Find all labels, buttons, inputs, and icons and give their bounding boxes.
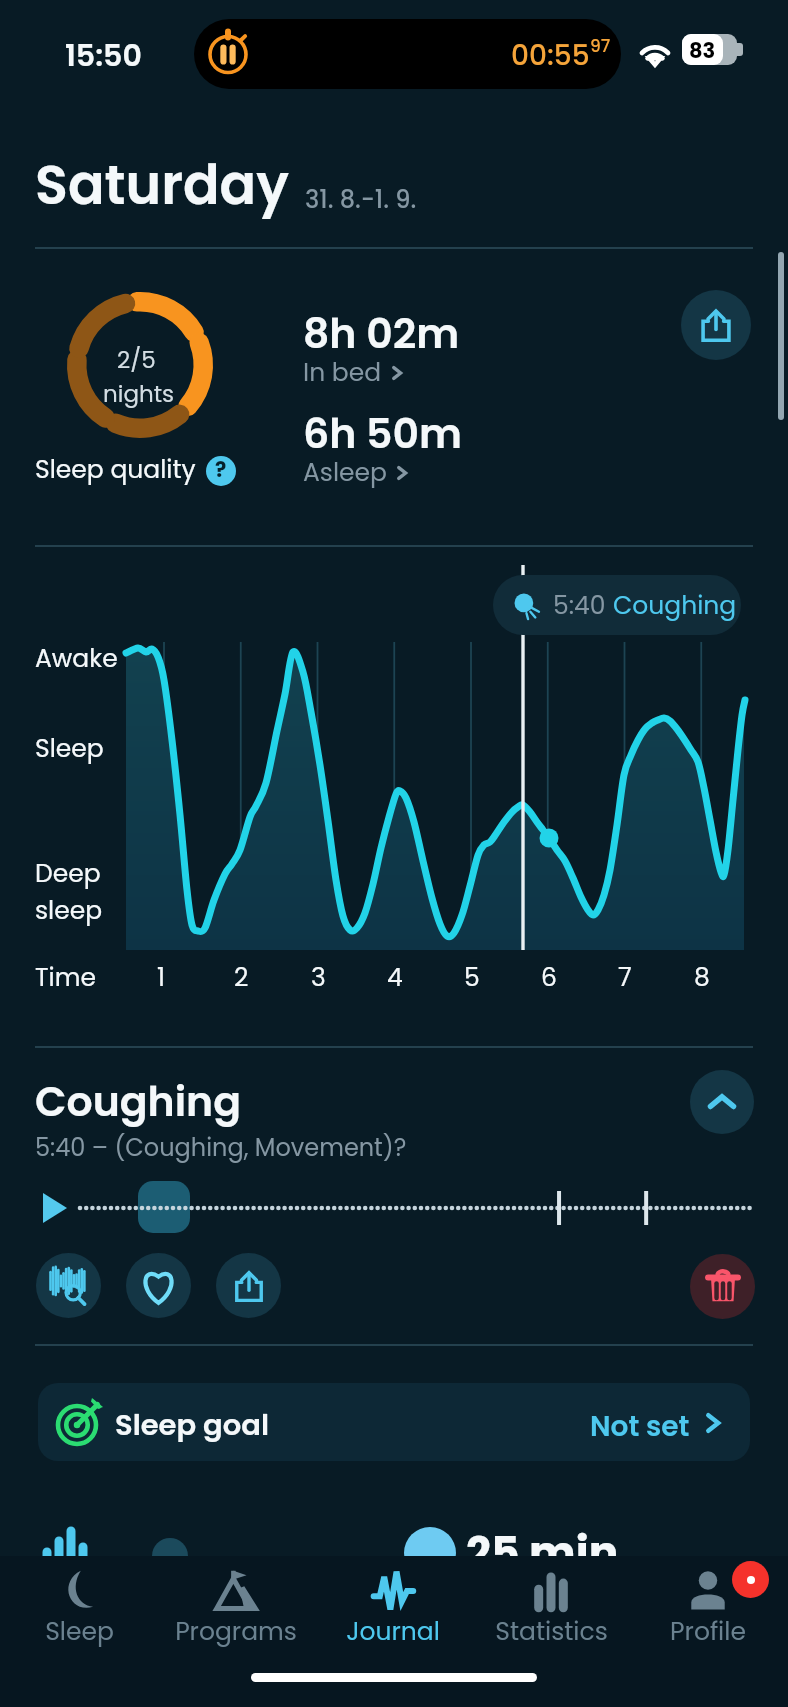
button[interactable]: Sleep	[7, 1556, 151, 1651]
button[interactable]: Share recording	[216, 1253, 281, 1318]
staticText: 6	[541, 960, 557, 995]
staticText: Saturday	[35, 147, 289, 223]
button[interactable]: Sleep goal	[38, 1383, 750, 1461]
staticText: 5:40	[553, 588, 613, 623]
staticText: Time	[35, 960, 96, 995]
staticText: nights	[103, 378, 175, 410]
button[interactable]: Favorite	[126, 1253, 191, 1318]
button[interactable]: Share night	[681, 290, 751, 360]
staticText: Coughing	[613, 588, 737, 623]
staticText: Sleep	[45, 1614, 114, 1649]
staticText: Deep sleep	[35, 856, 103, 928]
staticText: 3	[311, 960, 326, 995]
staticText: Not set	[590, 1407, 690, 1446]
staticText: 15:50	[65, 35, 142, 77]
staticText: 7	[618, 960, 632, 995]
staticText: Sleep goal	[115, 1405, 269, 1446]
staticText: 4	[387, 960, 403, 995]
staticText: 2	[234, 960, 249, 995]
button[interactable]: Profile	[636, 1556, 780, 1651]
staticText: 83	[689, 36, 716, 65]
staticText: 5:40 – (Coughing, Movement)?	[35, 1131, 407, 1165]
staticText: 97	[590, 34, 611, 58]
button[interactable]: Collapse	[690, 1070, 754, 1134]
staticText: Programs	[175, 1614, 297, 1649]
staticText: Sleep quality	[35, 452, 196, 487]
button[interactable]: Selected clip	[138, 1181, 190, 1233]
button[interactable]: Journal	[321, 1556, 465, 1651]
staticText: Coughing	[35, 1073, 241, 1130]
button[interactable]: Analyze sound	[36, 1253, 101, 1318]
staticText: Profile	[670, 1614, 746, 1649]
staticText: 31. 8.-1. 9.	[305, 183, 417, 217]
staticText: 8h 02m	[303, 305, 460, 362]
button[interactable]: Asleep	[303, 455, 411, 490]
staticText: 00:55	[511, 36, 590, 75]
staticText: 5	[464, 960, 480, 995]
button[interactable]: Programs	[164, 1556, 308, 1651]
staticText: Statistics	[495, 1614, 608, 1649]
button[interactable]: Sleep quality help	[206, 456, 236, 486]
staticText: In bed	[303, 355, 382, 390]
staticText: Sleep	[35, 731, 104, 766]
staticText: 6h 50m	[303, 405, 462, 462]
staticText: ?	[215, 456, 227, 484]
button[interactable]: Delete	[690, 1254, 755, 1319]
staticText: 25 min	[466, 1522, 619, 1584]
staticText: 8	[694, 960, 710, 995]
staticText: 2/5	[117, 344, 156, 376]
button[interactable]: Play	[30, 1186, 74, 1230]
staticText: Asleep	[303, 455, 387, 490]
button[interactable]: 5:40	[493, 575, 741, 635]
staticText: Journal	[346, 1614, 440, 1649]
staticText: Awake	[35, 641, 118, 676]
button[interactable]: In bed	[303, 355, 406, 390]
staticText: 1	[157, 960, 166, 995]
button[interactable]: Statistics	[479, 1556, 623, 1651]
